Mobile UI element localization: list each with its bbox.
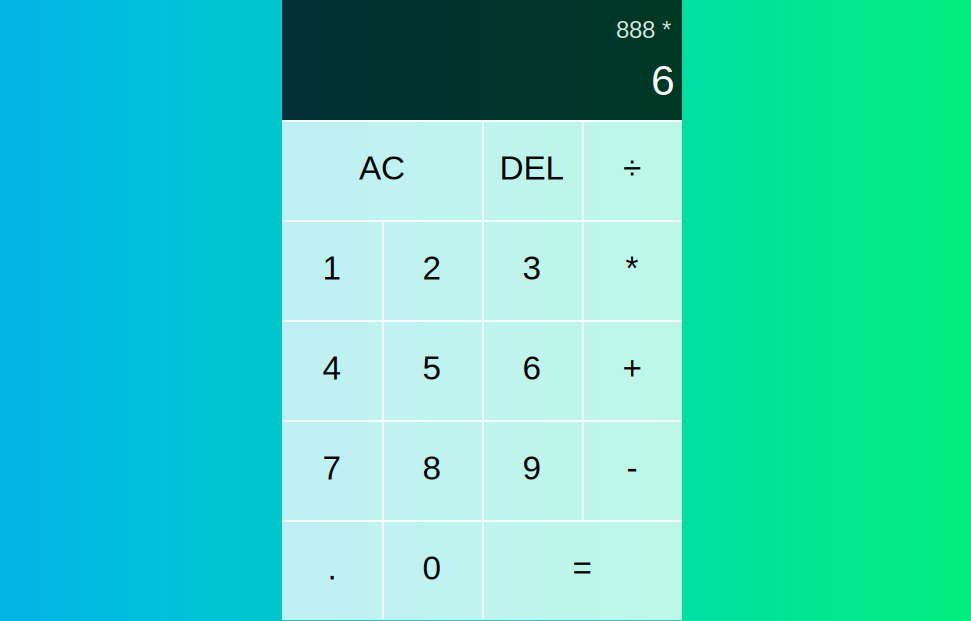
staticText: AC <box>359 149 405 187</box>
button[interactable]: . <box>282 520 382 620</box>
button[interactable]: 8 <box>382 420 482 520</box>
staticText: 6 <box>522 349 541 387</box>
button[interactable]: 5 <box>382 320 482 420</box>
staticText: 1 <box>322 249 341 287</box>
button[interactable]: DEL <box>482 120 582 220</box>
staticText: 8 <box>422 449 441 487</box>
button[interactable]: 6 <box>482 320 582 420</box>
staticText: - <box>626 449 637 487</box>
staticText: + <box>622 349 641 387</box>
staticText: DEL <box>499 149 564 187</box>
staticText: 5 <box>422 349 441 387</box>
staticText: 7 <box>322 449 341 487</box>
button[interactable]: 3 <box>482 220 582 320</box>
button[interactable]: + <box>582 320 682 420</box>
staticText: 3 <box>522 249 541 287</box>
staticText: . <box>327 549 336 587</box>
staticText: 0 <box>422 549 441 587</box>
button[interactable]: 2 <box>382 220 482 320</box>
staticText: = <box>572 549 591 587</box>
staticText: 4 <box>322 349 341 387</box>
staticText: 888 * <box>616 16 671 43</box>
button[interactable]: 7 <box>282 420 382 520</box>
button[interactable]: = <box>482 520 682 620</box>
button[interactable]: * <box>582 220 682 320</box>
staticText: 6 <box>651 56 675 104</box>
button[interactable]: AC <box>282 120 482 220</box>
staticText: 2 <box>422 249 441 287</box>
button[interactable]: - <box>582 420 682 520</box>
button[interactable]: 1 <box>282 220 382 320</box>
button[interactable]: 4 <box>282 320 382 420</box>
staticText: 9 <box>522 449 541 487</box>
button[interactable]: 0 <box>382 520 482 620</box>
button[interactable]: 9 <box>482 420 582 520</box>
button[interactable]: ÷ <box>582 120 682 220</box>
staticText: * <box>625 249 638 287</box>
staticText: ÷ <box>623 149 641 187</box>
